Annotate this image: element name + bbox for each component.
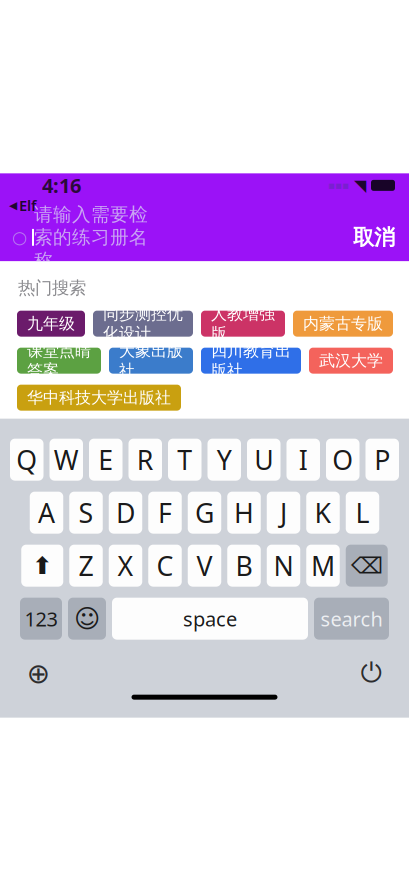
button[interactable]: C — [148, 545, 182, 587]
staticText: D — [116, 495, 135, 530]
staticText: R — [137, 442, 154, 477]
staticText: ⬆ — [32, 552, 52, 579]
button[interactable]: H — [227, 492, 261, 534]
staticText: G — [195, 495, 214, 530]
staticText: F — [158, 495, 172, 530]
button[interactable]: Dictation — [351, 654, 391, 694]
button[interactable]: J — [267, 492, 300, 534]
button[interactable]: S — [69, 492, 103, 534]
button[interactable]: Emoji — [68, 598, 106, 640]
staticText: 人教增强版 — [211, 304, 275, 343]
button[interactable]: E — [89, 439, 122, 481]
staticText: A — [38, 495, 55, 530]
button[interactable]: I — [286, 439, 320, 481]
staticText: T — [177, 442, 192, 477]
staticText: H — [234, 495, 254, 530]
button[interactable]: K — [306, 492, 340, 534]
button[interactable]: O — [326, 439, 359, 481]
button[interactable]: 武汉大学 — [309, 348, 393, 374]
staticText: ☺ — [74, 604, 100, 633]
staticText: ⌫ — [351, 553, 383, 578]
button[interactable]: 大象出版社 — [109, 348, 193, 374]
button[interactable]: space — [112, 598, 308, 640]
staticText: ▪▪▪ — [328, 179, 349, 191]
button[interactable]: 人教增强版 — [201, 311, 285, 337]
button[interactable]: Y — [207, 439, 241, 481]
button[interactable]: D — [109, 492, 142, 534]
staticText: I — [299, 442, 308, 477]
button[interactable]: 课堂点睛答案 — [17, 348, 101, 374]
staticText: V — [196, 548, 212, 583]
button[interactable]: Shift — [21, 545, 63, 587]
button[interactable]: L — [346, 492, 379, 534]
staticText: M — [311, 548, 335, 583]
staticText: ○ — [12, 227, 27, 247]
button[interactable]: T — [168, 439, 201, 481]
staticText: C — [156, 548, 173, 583]
button[interactable]: 九年级 — [17, 311, 85, 337]
button[interactable]: X — [109, 545, 142, 587]
staticText: K — [314, 495, 331, 530]
staticText: J — [280, 495, 287, 530]
button[interactable]: G — [188, 492, 221, 534]
button[interactable]: Z — [69, 545, 103, 587]
staticText: 同步测控优化设计 — [103, 304, 183, 343]
staticText: 武汉大学 — [319, 351, 383, 370]
staticText: search — [320, 605, 382, 632]
staticText: Q — [16, 442, 37, 477]
staticText: 热门搜索 — [18, 277, 86, 299]
staticText: ⊕ — [26, 658, 49, 690]
staticText: 4:16 — [42, 172, 81, 199]
staticText: space — [183, 605, 237, 632]
staticText: X — [117, 548, 133, 583]
staticText: 华中科技大学出版社 — [27, 388, 171, 407]
button[interactable]: 四川教育出版社 — [201, 348, 301, 374]
staticText: S — [78, 495, 93, 530]
button[interactable]: F — [148, 492, 182, 534]
staticText: ◀ — [9, 199, 17, 211]
staticText: 九年级 — [27, 314, 75, 333]
button[interactable]: N — [267, 545, 300, 587]
button[interactable]: U — [247, 439, 280, 481]
staticText: Y — [217, 442, 232, 477]
staticText: N — [273, 548, 293, 583]
button[interactable]: P — [365, 439, 399, 481]
staticText: Z — [78, 548, 93, 583]
staticText: Elf — [19, 196, 36, 215]
button[interactable]: Q — [10, 439, 43, 481]
staticText: P — [374, 442, 390, 477]
staticText: ◥ — [354, 176, 366, 194]
staticText: B — [235, 548, 252, 583]
button[interactable]: 取消 — [339, 218, 409, 256]
button[interactable]: W — [49, 439, 83, 481]
staticText: E — [98, 442, 113, 477]
button[interactable]: M — [306, 545, 340, 587]
staticText: 四川教育出版社 — [211, 341, 291, 380]
button[interactable]: 123 — [20, 598, 62, 640]
button[interactable]: 同步测控优化设计 — [93, 311, 193, 337]
staticText: 内蒙古专版 — [303, 314, 383, 333]
staticText: ⏻ — [360, 661, 381, 687]
button[interactable]: Delete — [346, 545, 388, 587]
button[interactable]: V — [188, 545, 221, 587]
button[interactable]: A — [30, 492, 63, 534]
button[interactable]: search — [314, 598, 389, 640]
staticText: 大象出版社 — [119, 341, 183, 380]
staticText: 123 — [24, 605, 57, 632]
button[interactable]: B — [227, 545, 261, 587]
staticText: W — [54, 442, 79, 477]
button[interactable]: R — [128, 439, 162, 481]
staticText: 课堂点睛答案 — [27, 341, 91, 380]
button[interactable]: Switch keyboard — [18, 654, 58, 694]
staticText: O — [332, 442, 353, 477]
staticText: 取消 — [353, 224, 395, 250]
staticText: L — [355, 495, 369, 530]
staticText: 请输入需要检索的练习册名称 — [34, 203, 148, 272]
staticText: U — [254, 442, 273, 477]
button[interactable]: 华中科技大学出版社 — [17, 385, 181, 411]
button[interactable]: 内蒙古专版 — [293, 311, 393, 337]
